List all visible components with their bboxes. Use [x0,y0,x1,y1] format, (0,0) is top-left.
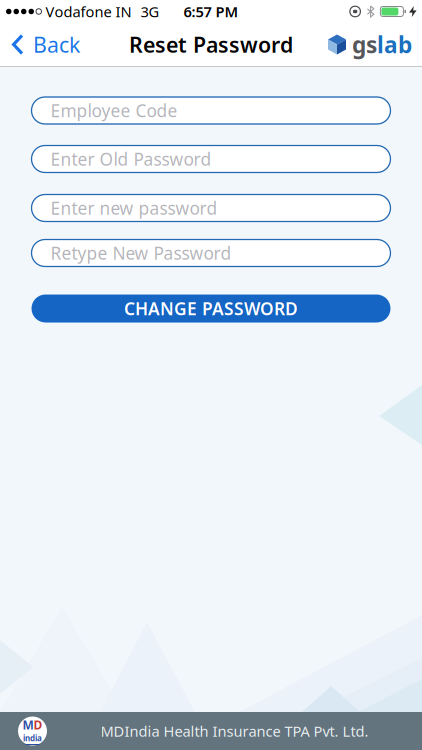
staticText: CHANGE PASSWORD [124,297,298,320]
staticText: india [23,733,42,743]
staticText: lab [377,29,412,59]
button[interactable]: CHANGE PASSWORD [31,294,390,322]
staticText: Reset Password [129,30,293,59]
staticText: MDIndia Health Insurance TPA Pvt. Ltd. [100,721,368,741]
staticText: Enter new password [50,196,217,219]
staticText: 3G [140,2,159,21]
button[interactable]: Enter Old Password [31,145,390,172]
button[interactable]: Employee Code [31,97,390,124]
staticText: Enter Old Password [50,147,211,170]
staticText: D [33,717,42,733]
staticText: Back [33,30,80,59]
staticText: M [22,717,33,733]
staticText: Retype New Password [50,241,231,264]
button[interactable]: Retype New Password [31,239,390,266]
staticText: gs [352,29,377,59]
button[interactable]: Back [0,22,80,67]
staticText: Vodafone IN [45,2,131,21]
staticText: Employee Code [50,99,177,122]
staticText: 6:57 PM [183,2,238,21]
button[interactable]: Enter new password [31,194,390,221]
